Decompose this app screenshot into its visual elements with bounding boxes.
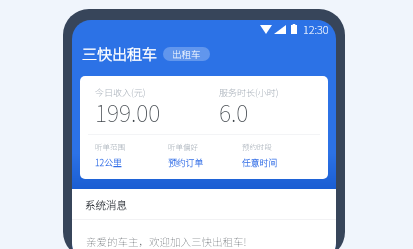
button[interactable]: 出租车 [163, 47, 210, 61]
button[interactable]: 亲爱的车主，欢迎加入三快出租车! [72, 220, 336, 249]
button[interactable]: 听单范围 [95, 141, 168, 169]
staticText: 预约时段 [242, 141, 272, 152]
staticText: 亲爱的车主，欢迎加入三快出租车! [86, 234, 247, 249]
staticText: 服务时长(小时) [219, 86, 279, 99]
staticText: 199.00 [95, 95, 161, 128]
button[interactable]: 听单偏好 [168, 141, 242, 169]
staticText: 任意时间 [242, 156, 278, 169]
button[interactable]: 预约时段 [242, 141, 312, 169]
staticText: 12公里 [95, 156, 122, 169]
staticText: 今日收入(元) [95, 86, 146, 99]
staticText: 预约订单 [168, 156, 204, 169]
staticText: 听单偏好 [168, 141, 198, 152]
staticText: 出租车 [172, 47, 201, 61]
staticText: 12:30 [303, 21, 329, 37]
staticText: 三快出租车 [82, 43, 158, 65]
other: Signal strength [274, 25, 286, 34]
other: Battery [291, 24, 297, 34]
staticText: 系统消息 [85, 197, 127, 212]
staticText: 听单范围 [95, 141, 125, 152]
staticText: 6.0 [219, 95, 249, 128]
other: Wi-Fi [260, 25, 272, 34]
